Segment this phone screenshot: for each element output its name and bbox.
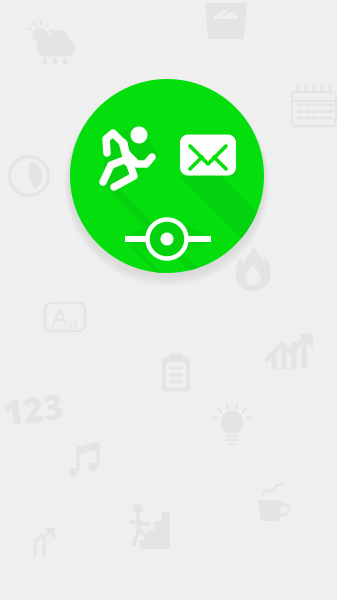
staticText: 123 [3,386,63,432]
staticText: a [68,311,78,334]
staticText: A [51,300,67,334]
